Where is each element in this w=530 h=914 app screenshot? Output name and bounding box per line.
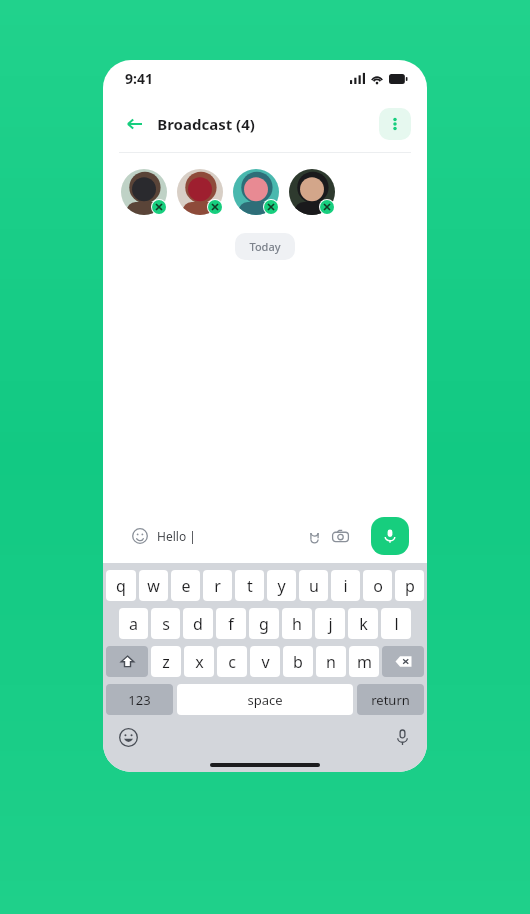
button[interactable]: u bbox=[299, 570, 328, 601]
button[interactable]: Backspace bbox=[382, 646, 424, 677]
staticText: c bbox=[228, 651, 236, 673]
staticText: x bbox=[195, 651, 204, 673]
staticText: f bbox=[228, 613, 234, 635]
button[interactable]: b bbox=[283, 646, 313, 677]
staticText: k bbox=[359, 613, 368, 635]
button[interactable]: d bbox=[183, 608, 213, 639]
staticText: l bbox=[394, 613, 399, 635]
staticText: t bbox=[247, 575, 253, 597]
button[interactable]: j bbox=[315, 608, 345, 639]
button[interactable]: t bbox=[235, 570, 264, 601]
staticText: b bbox=[293, 651, 303, 673]
button[interactable]: Emoji bbox=[121, 518, 360, 554]
button[interactable]: Emoji keyboard bbox=[117, 726, 139, 748]
other: Camera bbox=[332, 528, 349, 545]
staticText: i bbox=[343, 575, 348, 597]
button[interactable]: v bbox=[250, 646, 280, 677]
staticText: d bbox=[193, 613, 203, 635]
staticText: m bbox=[357, 651, 372, 673]
staticText: return bbox=[371, 691, 410, 709]
button[interactable]: Voice message bbox=[371, 517, 409, 555]
other: Emoji bbox=[132, 528, 148, 544]
staticText: 123 bbox=[128, 691, 151, 709]
staticText: space bbox=[247, 691, 283, 709]
staticText: h bbox=[292, 613, 302, 635]
staticText: s bbox=[162, 613, 170, 635]
staticText: Today bbox=[249, 239, 281, 254]
button[interactable]: p bbox=[395, 570, 424, 601]
button[interactable]: y bbox=[267, 570, 296, 601]
button[interactable]: a bbox=[119, 608, 148, 639]
staticText: o bbox=[373, 575, 383, 597]
button[interactable]: n bbox=[316, 646, 346, 677]
button[interactable]: f bbox=[216, 608, 246, 639]
button[interactable]: x bbox=[184, 646, 214, 677]
button[interactable]: h bbox=[282, 608, 312, 639]
button[interactable]: r bbox=[203, 570, 232, 601]
button[interactable]: s bbox=[151, 608, 180, 639]
button[interactable]: Dictation bbox=[391, 726, 413, 748]
button[interactable]: l bbox=[381, 608, 411, 639]
staticText: q bbox=[116, 575, 126, 597]
staticText: u bbox=[309, 575, 319, 597]
other: Attach bbox=[307, 529, 322, 544]
button[interactable]: k bbox=[348, 608, 378, 639]
staticText: z bbox=[162, 651, 170, 673]
staticText: a bbox=[129, 613, 138, 635]
button[interactable]: 123 bbox=[106, 684, 173, 715]
button[interactable]: g bbox=[249, 608, 279, 639]
staticText: Broadcast (4) bbox=[157, 114, 255, 134]
button[interactable]: q bbox=[106, 570, 136, 601]
staticText: 9:41 bbox=[125, 69, 153, 88]
staticText: v bbox=[261, 651, 270, 673]
button[interactable]: Shift bbox=[106, 646, 148, 677]
button[interactable]: Participant 4 bbox=[289, 169, 335, 215]
button[interactable]: Back bbox=[119, 109, 149, 139]
button[interactable]: More options bbox=[379, 108, 411, 140]
button[interactable]: c bbox=[217, 646, 247, 677]
button[interactable]: return bbox=[357, 684, 424, 715]
staticText: j bbox=[328, 613, 333, 635]
staticText: e bbox=[181, 575, 191, 597]
button[interactable]: o bbox=[363, 570, 392, 601]
staticText: w bbox=[147, 575, 160, 597]
staticText: n bbox=[326, 651, 336, 673]
button[interactable]: i bbox=[331, 570, 360, 601]
button[interactable]: m bbox=[349, 646, 379, 677]
staticText: r bbox=[214, 575, 221, 597]
staticText: y bbox=[277, 575, 286, 597]
button[interactable]: space bbox=[177, 684, 353, 715]
button[interactable]: w bbox=[139, 570, 168, 601]
button[interactable]: Participant 2 bbox=[177, 169, 223, 215]
staticText: Hello | bbox=[157, 528, 196, 544]
button[interactable]: Participant 3 bbox=[233, 169, 279, 215]
staticText: g bbox=[259, 613, 269, 635]
button[interactable]: Participant 1 bbox=[121, 169, 167, 215]
button[interactable]: z bbox=[151, 646, 181, 677]
button[interactable]: e bbox=[171, 570, 200, 601]
staticText: p bbox=[405, 575, 415, 597]
